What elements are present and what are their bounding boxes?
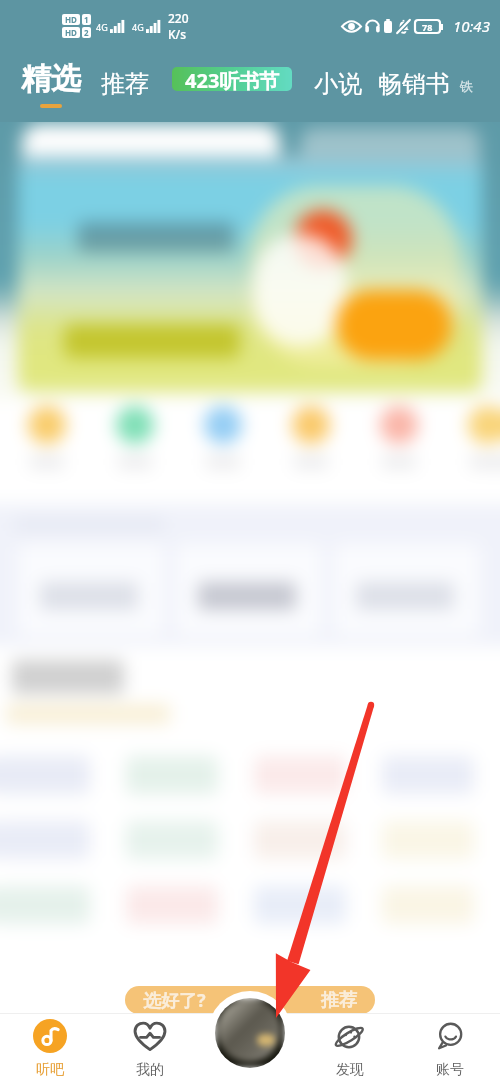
staticText: 精选 [21, 60, 81, 98]
other: 我的 [133, 1019, 167, 1053]
staticText: 选好了? [143, 988, 206, 1013]
button[interactable]: 小说 [314, 69, 362, 99]
staticText: 4G [132, 21, 144, 33]
button[interactable]: 推荐 [101, 69, 149, 99]
button[interactable]: 账号 [400, 1013, 500, 1084]
staticText: 推荐 [101, 69, 149, 99]
staticText: HD [65, 27, 77, 38]
button[interactable]: 铁 [460, 78, 473, 94]
staticText: 1 [84, 14, 89, 25]
staticText: 账号 [436, 1061, 464, 1079]
button[interactable]: 发现 [300, 1013, 400, 1084]
staticText: 我的 [136, 1061, 164, 1079]
other: 听吧 [33, 1019, 67, 1053]
staticText: HD [65, 14, 77, 25]
button[interactable]: 精选 [21, 60, 81, 108]
staticText: 220 [168, 10, 189, 26]
button[interactable]: 选好了? [125, 986, 375, 1014]
staticText: 4G [96, 21, 108, 33]
button[interactable]: 听吧 [0, 1013, 100, 1084]
staticText: 发现 [336, 1061, 364, 1079]
staticText: 畅销书 [378, 69, 450, 99]
staticText: 423听书节 [185, 67, 280, 91]
button[interactable]: 423听书节 [172, 67, 292, 91]
button[interactable]: 畅销书 [378, 69, 450, 99]
other: 账号 [433, 1019, 467, 1053]
staticText: 2 [84, 27, 89, 38]
staticText: 78 [422, 21, 433, 33]
staticText: 小说 [314, 69, 362, 99]
staticText: 10:43 [453, 16, 490, 36]
staticText: 推荐 [321, 989, 357, 1012]
other: 发现 [333, 1019, 367, 1053]
button[interactable]: Play [208, 991, 292, 1075]
staticText: K/s [168, 26, 187, 42]
staticText: 铁 [460, 78, 473, 94]
button[interactable]: 我的 [100, 1013, 200, 1084]
staticText: 听吧 [36, 1061, 64, 1079]
